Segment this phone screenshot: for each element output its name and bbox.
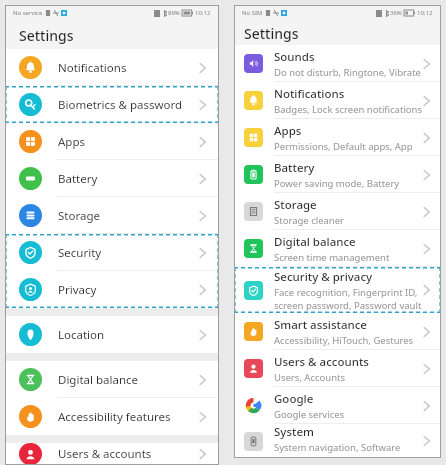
button[interactable]: System <box>234 424 441 458</box>
button[interactable]: Users & accounts <box>5 443 219 465</box>
staticText: Badges, Lock screen notifications <box>274 103 422 116</box>
button[interactable]: Security & privacy <box>234 267 441 313</box>
staticText: Digital balance <box>274 234 356 250</box>
button[interactable]: Smart assistance <box>234 313 441 350</box>
staticText: System <box>274 424 314 440</box>
button[interactable]: Digital balance <box>5 361 219 398</box>
staticText: Do not disturb, Ringtone, Vibrate <box>274 66 421 79</box>
staticText: Permissions, Default apps, App twin <box>274 140 422 153</box>
staticText: Security & privacy <box>274 269 373 285</box>
staticText: 10:12 <box>417 9 433 17</box>
staticText: 89% <box>168 9 180 17</box>
staticText: Settings <box>19 26 74 45</box>
button[interactable]: Security <box>5 234 219 271</box>
staticText: Notifications <box>274 86 345 102</box>
button[interactable]: Battery <box>234 156 441 193</box>
staticText: No service <box>13 9 43 17</box>
staticText: Notifications <box>58 60 198 76</box>
staticText: Power saving mode, Battery usage <box>274 177 422 190</box>
staticText: Users & accounts <box>58 446 198 462</box>
staticText: Settings <box>244 24 299 43</box>
staticText: Location <box>58 327 198 343</box>
staticText: Biometrics & password <box>58 97 198 113</box>
staticText: 10:12 <box>195 9 211 17</box>
button[interactable]: Apps <box>234 119 441 156</box>
button[interactable]: Users & accounts <box>234 350 441 387</box>
staticText: Users, Accounts <box>274 371 346 384</box>
staticText: Screen time management <box>274 251 390 264</box>
staticText: 36% <box>390 9 402 17</box>
button[interactable]: Location <box>5 316 219 353</box>
staticText: Users & accounts <box>274 354 369 370</box>
staticText: About phone, Language & input <box>274 454 417 458</box>
button[interactable]: Notifications <box>234 82 441 119</box>
button[interactable]: Digital balance <box>234 230 441 267</box>
staticText: No SIM <box>242 9 263 17</box>
staticText: Smart assistance <box>274 317 367 333</box>
button[interactable]: Sounds <box>234 45 441 82</box>
staticText: Privacy <box>58 282 198 298</box>
staticText: Apps <box>274 123 302 139</box>
staticText: screen password, Password vault <box>274 299 422 312</box>
staticText: Accessibility features <box>58 409 198 425</box>
staticText: Storage <box>274 197 317 213</box>
staticText: Sounds <box>274 49 315 65</box>
staticText: Face recognition, Fingerprint ID, Lock <box>274 286 422 299</box>
staticText: Google <box>274 391 314 407</box>
button[interactable]: Privacy <box>5 271 219 308</box>
staticText: System navigation, Software update, <box>274 441 422 454</box>
staticText: Battery <box>274 160 315 176</box>
staticText: Battery <box>58 171 198 187</box>
button[interactable]: Google <box>234 387 441 424</box>
staticText: Storage <box>58 208 198 224</box>
staticText: Storage cleaner <box>274 214 344 227</box>
staticText: Apps <box>58 134 198 150</box>
button[interactable]: Accessibility features <box>5 398 219 435</box>
staticText: Digital balance <box>58 372 198 388</box>
staticText: Accessibility, HiTouch, Gestures <box>274 334 414 347</box>
staticText: Google services <box>274 408 345 421</box>
button[interactable]: Battery <box>5 160 219 197</box>
button[interactable]: Storage <box>5 197 219 234</box>
staticText: Security <box>58 245 198 261</box>
button[interactable]: Storage <box>234 193 441 230</box>
button[interactable]: Biometrics & password <box>5 86 219 123</box>
button[interactable]: Notifications <box>5 49 219 86</box>
button[interactable]: Apps <box>5 123 219 160</box>
